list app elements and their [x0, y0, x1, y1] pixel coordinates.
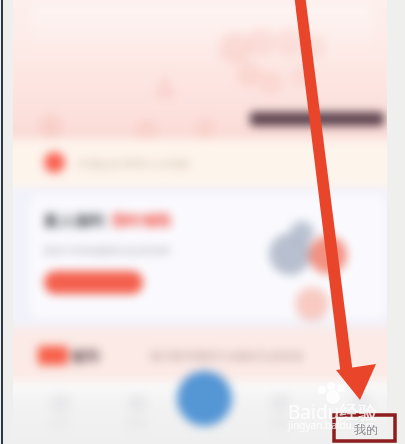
staticText: jingyan.baidu.com — [288, 418, 375, 432]
staticText: 开通会员 尊享六大特权 — [77, 156, 190, 171]
staticText: 签到 — [71, 348, 99, 366]
staticText: 每日签到领积分兑换好礼多多多 — [150, 349, 304, 363]
button[interactable]: 签到 — [13, 327, 387, 381]
button[interactable]: Add — [177, 371, 232, 426]
button[interactable]: 我的 — [337, 394, 385, 430]
staticText: Baidu经验 — [288, 399, 378, 425]
staticText: 限时领取 — [112, 212, 172, 231]
staticText: 我的 — [354, 422, 378, 437]
button[interactable] — [44, 271, 143, 294]
button[interactable]: 开通会员 尊享六大特权 — [13, 139, 387, 187]
button[interactable]: 消息 — [256, 394, 304, 430]
staticText: 新人福利 — [44, 212, 104, 231]
staticText: 我的 — [350, 416, 372, 430]
